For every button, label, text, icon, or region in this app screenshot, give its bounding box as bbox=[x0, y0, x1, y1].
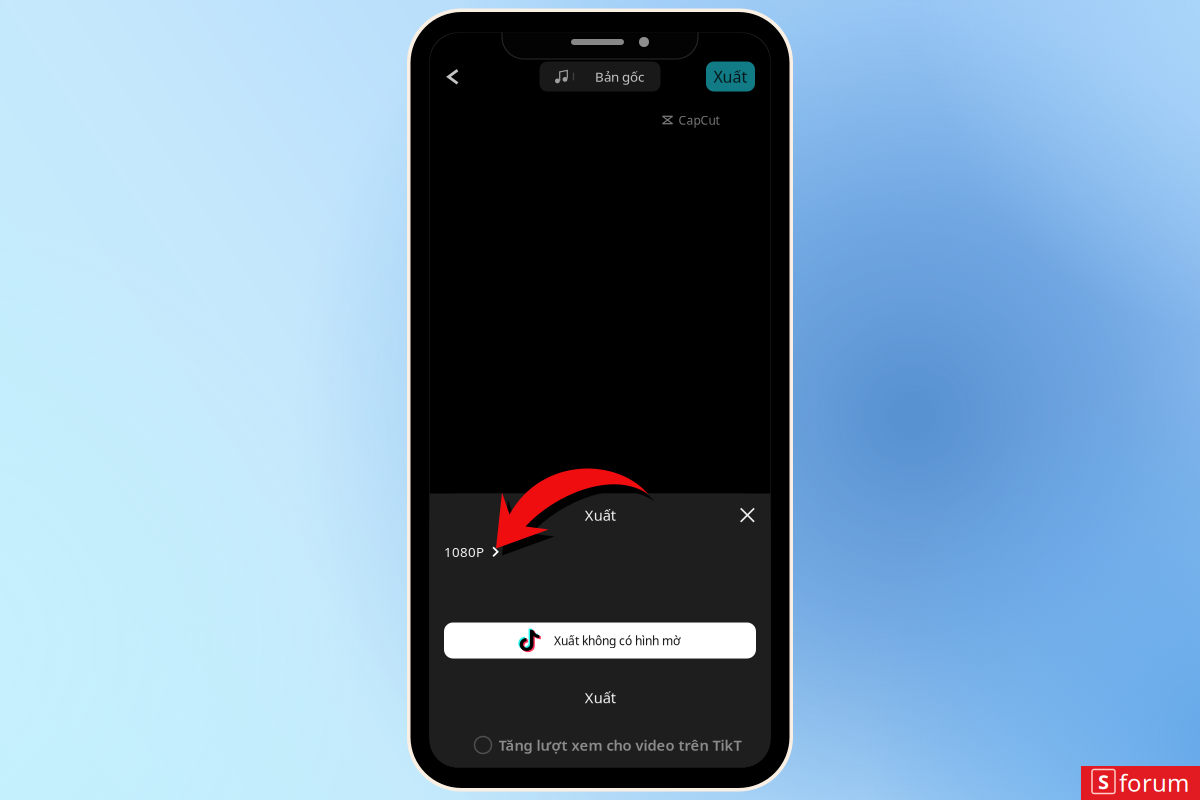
button[interactable]: Bản gốc bbox=[539, 61, 660, 91]
button[interactable]: Xuất không có hình mờ bbox=[444, 622, 756, 658]
staticText: S bbox=[1098, 768, 1109, 795]
staticText: CapCut bbox=[678, 112, 719, 128]
button[interactable]: 1080P bbox=[441, 537, 501, 567]
button[interactable]: Xuất bbox=[706, 61, 755, 91]
button[interactable]: Close bbox=[732, 500, 762, 530]
staticText: Xuất bbox=[585, 688, 616, 707]
staticText: Xuất không có hình mờ bbox=[554, 632, 680, 648]
staticText: forum bbox=[1119, 767, 1189, 798]
staticText: Tăng lượt xem cho video trên TikT bbox=[498, 735, 741, 755]
staticText: Xuất bbox=[585, 505, 616, 525]
staticText: Bản gốc bbox=[595, 68, 644, 85]
button[interactable]: Xuất bbox=[545, 681, 655, 713]
staticText: 1080P bbox=[444, 543, 484, 561]
button[interactable]: Tăng lượt xem cho video trên TikT bbox=[474, 731, 741, 759]
button[interactable]: Back bbox=[436, 60, 470, 94]
staticText: Xuất bbox=[713, 66, 747, 87]
